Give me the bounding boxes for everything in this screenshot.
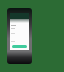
button[interactable]: Continue	[12, 45, 27, 48]
